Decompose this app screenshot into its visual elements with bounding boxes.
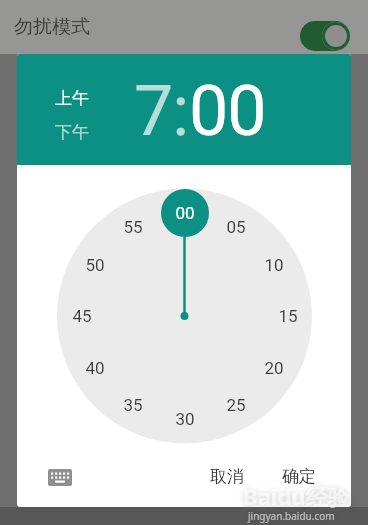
staticText: 10 — [264, 255, 284, 275]
staticText: 00 — [175, 203, 195, 223]
staticText: 确定 — [282, 466, 316, 487]
staticText: 40 — [85, 358, 105, 378]
staticText: 45 — [72, 306, 92, 326]
button[interactable]: 确定 — [272, 458, 326, 494]
button[interactable] — [300, 21, 350, 51]
button[interactable]: 上午 — [55, 88, 89, 109]
staticText: 55 — [123, 217, 143, 237]
staticText: 35 — [123, 395, 143, 415]
staticText: 00 — [189, 70, 266, 152]
staticText: jingyan.baidu.com — [248, 509, 335, 523]
staticText: Baidu经验 — [243, 481, 350, 511]
staticText: 勿扰模式 — [14, 15, 90, 39]
staticText: 7: — [134, 70, 189, 152]
staticText: 取消 — [210, 466, 244, 487]
button[interactable]: 取消 — [200, 458, 254, 494]
button[interactable] — [161, 189, 209, 237]
staticText: 05 — [226, 217, 246, 237]
button[interactable]: 下午 — [55, 122, 89, 143]
staticText: 25 — [226, 395, 246, 415]
staticText: 50 — [85, 255, 105, 275]
staticText: 30 — [175, 409, 195, 429]
staticText: 20 — [264, 358, 284, 378]
staticText: 15 — [278, 306, 298, 326]
button[interactable] — [48, 469, 72, 486]
